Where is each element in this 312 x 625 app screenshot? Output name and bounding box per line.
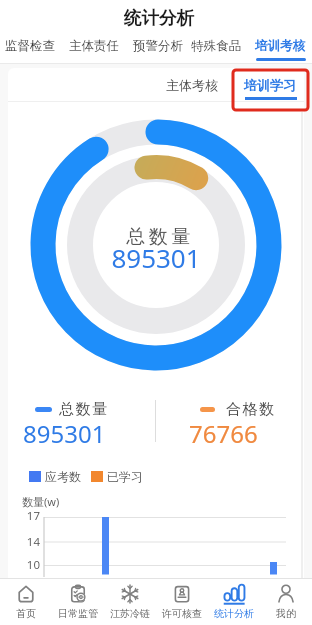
staticText: 预警分析 — [133, 38, 183, 54]
staticText: 应考数 — [45, 469, 81, 484]
button[interactable]: 合格数 — [179, 398, 267, 444]
button[interactable]: 许可核查 — [156, 579, 208, 625]
button[interactable]: 主体考核 — [160, 72, 224, 98]
staticText: 培训学习 — [244, 77, 296, 93]
staticText: 14 — [10, 534, 40, 550]
button[interactable]: 首页 — [0, 579, 52, 625]
staticText: 76766 — [189, 417, 258, 450]
staticText: 17 — [10, 508, 40, 524]
staticText: 已学习 — [107, 469, 143, 484]
staticText: 合格数 — [226, 400, 276, 419]
staticText: 895301 — [23, 417, 106, 450]
button[interactable]: 应考数 — [29, 469, 143, 484]
button[interactable]: 培训考核 — [253, 32, 307, 60]
button[interactable]: 预警分析 — [131, 32, 185, 60]
staticText: 监督检查 — [5, 38, 55, 54]
button[interactable]: 统计分析 — [208, 579, 260, 625]
staticText: 培训考核 — [255, 38, 305, 54]
button[interactable]: 日常监管 — [52, 579, 104, 625]
button[interactable]: 监督检查 — [3, 32, 57, 60]
staticText: 我的 — [276, 607, 296, 620]
staticText: 总数量 — [59, 400, 109, 419]
staticText: 统计分析 — [3, 7, 312, 29]
button[interactable]: 总数量 — [20, 398, 108, 444]
staticText: 895301 — [0, 240, 312, 275]
staticText: 首页 — [16, 607, 36, 620]
staticText: 日常监管 — [58, 607, 98, 620]
button[interactable]: 江苏冷链 — [104, 579, 156, 625]
staticText: 江苏冷链 — [110, 607, 150, 620]
staticText: 总数量 — [4, 225, 312, 249]
button[interactable]: 我的 — [260, 579, 312, 625]
staticText: 统计分析 — [214, 607, 254, 620]
staticText: 10 — [10, 557, 40, 573]
staticText: 许可核查 — [162, 607, 202, 620]
button[interactable]: 培训学习 — [238, 72, 302, 98]
staticText: 特殊食品 — [191, 38, 241, 54]
staticText: 数量(w) — [22, 494, 60, 509]
staticText: 主体责任 — [69, 38, 119, 54]
staticText: 主体考核 — [166, 77, 218, 93]
button[interactable]: 特殊食品 — [189, 32, 243, 60]
button[interactable]: 主体责任 — [67, 32, 121, 60]
